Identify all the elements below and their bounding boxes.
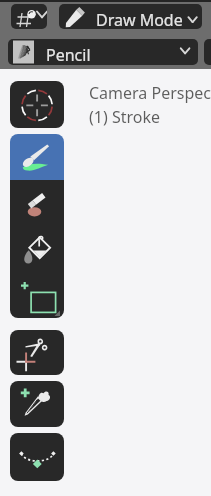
staticText: (1) Stroke: [89, 106, 161, 128]
staticText: Pencil: [46, 44, 91, 65]
button[interactable]: Interpolate: [10, 433, 64, 481]
button[interactable]: More options: [204, 39, 211, 65]
button[interactable]: Cursor: [10, 81, 64, 128]
button[interactable]: Add Primitive: [10, 272, 64, 318]
button[interactable]: Cutter: [10, 330, 64, 375]
button[interactable]: Draw: [10, 134, 64, 180]
staticText: Camera Perspective: [89, 82, 211, 104]
button[interactable]: Pencil: [8, 39, 198, 65]
button[interactable]: Draw Mode: [59, 4, 202, 29]
button[interactable]: Erase: [10, 180, 64, 226]
button[interactable]: Eyedropper: [10, 381, 64, 427]
button[interactable]: Editor Type: [11, 4, 47, 29]
staticText: Draw Mode: [96, 9, 183, 29]
button[interactable]: Fill: [10, 226, 64, 272]
